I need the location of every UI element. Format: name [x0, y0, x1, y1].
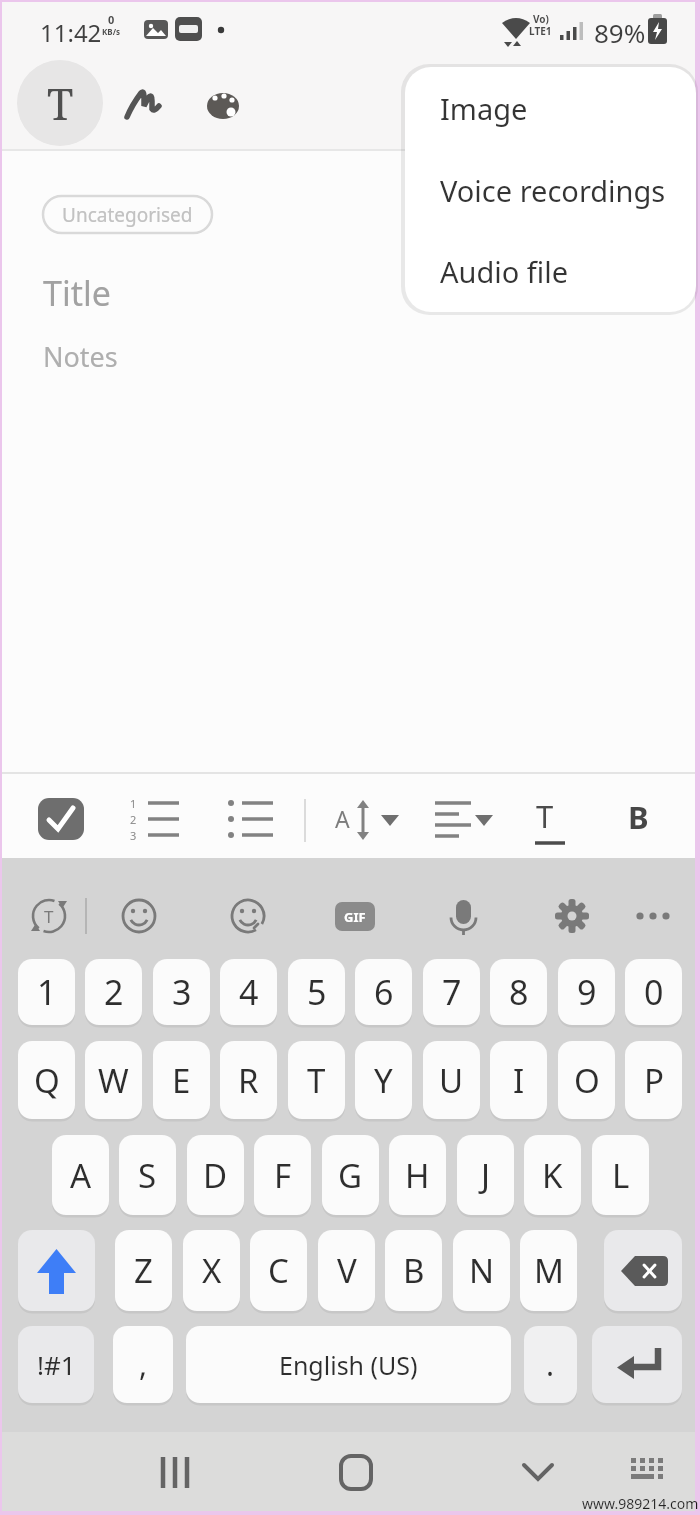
button[interactable]: X — [183, 1230, 240, 1311]
staticText: 3 — [130, 828, 137, 843]
staticText: M — [534, 1248, 564, 1293]
button[interactable]: 2 — [85, 959, 142, 1025]
button[interactable] — [426, 790, 494, 850]
button[interactable]: A — [52, 1135, 109, 1215]
button[interactable]: Y — [355, 1041, 412, 1119]
staticText: I — [513, 1058, 525, 1103]
staticText: 0 — [108, 12, 115, 27]
button[interactable]: O — [558, 1041, 615, 1119]
button[interactable]: S — [119, 1135, 176, 1215]
button[interactable] — [142, 1440, 206, 1504]
staticText: L — [612, 1153, 630, 1198]
staticText: T — [44, 905, 54, 928]
button[interactable] — [436, 890, 490, 944]
staticText: A — [70, 1153, 92, 1198]
staticText: Q — [34, 1058, 60, 1103]
staticText: T — [307, 1058, 326, 1103]
staticText: , — [139, 1344, 148, 1385]
staticText: J — [481, 1153, 491, 1198]
staticText: 2 — [104, 969, 124, 1015]
staticText: R — [238, 1058, 259, 1103]
button[interactable]: C — [250, 1230, 307, 1311]
button[interactable] — [221, 890, 275, 944]
staticText: 4 — [239, 969, 259, 1015]
button[interactable]: M — [520, 1230, 577, 1311]
button[interactable]: H — [389, 1135, 446, 1215]
button[interactable]: Audio file — [405, 231, 696, 312]
button[interactable] — [22, 890, 76, 944]
button[interactable] — [616, 1440, 680, 1504]
button[interactable]: Q — [18, 1041, 75, 1119]
button[interactable]: , — [113, 1326, 173, 1403]
button[interactable]: U — [423, 1041, 480, 1119]
button[interactable]: English (US) — [186, 1326, 511, 1403]
button[interactable]: I — [490, 1041, 547, 1119]
button[interactable]: 5 — [288, 959, 345, 1025]
staticText: GIF — [344, 908, 366, 926]
button[interactable]: F — [254, 1135, 311, 1215]
button[interactable] — [616, 790, 664, 850]
button[interactable]: J — [457, 1135, 514, 1215]
button[interactable]: T — [288, 1041, 345, 1119]
staticText: . — [546, 1344, 555, 1385]
staticText: Y — [374, 1058, 393, 1103]
button[interactable]: . — [524, 1326, 577, 1403]
button[interactable]: 3 — [153, 959, 210, 1025]
button[interactable]: 9 — [558, 959, 615, 1025]
button[interactable]: B — [385, 1230, 442, 1311]
staticText: 89% — [594, 15, 646, 50]
button[interactable]: V — [318, 1230, 375, 1311]
button[interactable]: 7 — [423, 959, 480, 1025]
staticText: 8 — [509, 969, 529, 1015]
button[interactable] — [18, 1230, 95, 1311]
button[interactable]: 6 — [355, 959, 412, 1025]
button[interactable] — [626, 890, 680, 944]
button[interactable]: 1 — [18, 959, 75, 1025]
button[interactable] — [545, 890, 599, 944]
button[interactable]: Voice recordings — [405, 149, 696, 231]
staticText: S — [138, 1153, 157, 1198]
button[interactable] — [327, 790, 403, 850]
staticText: B — [628, 796, 649, 838]
button[interactable] — [328, 890, 382, 944]
button[interactable]: D — [187, 1135, 244, 1215]
button[interactable] — [194, 76, 250, 132]
button[interactable] — [604, 1230, 682, 1311]
button[interactable] — [322, 1440, 386, 1504]
button[interactable] — [32, 790, 94, 850]
staticText: English (US) — [279, 1348, 418, 1382]
button[interactable]: R — [220, 1041, 277, 1119]
button[interactable] — [127, 790, 187, 850]
button[interactable] — [592, 1326, 682, 1403]
button[interactable] — [504, 1440, 568, 1504]
button[interactable]: W — [85, 1041, 142, 1119]
button[interactable]: N — [453, 1230, 510, 1311]
button[interactable] — [112, 890, 166, 944]
button[interactable] — [114, 76, 170, 132]
button[interactable]: 4 — [220, 959, 277, 1025]
button[interactable]: T — [17, 60, 103, 146]
staticText: U — [439, 1058, 464, 1103]
button[interactable]: Z — [115, 1230, 172, 1311]
staticText: C — [268, 1248, 289, 1293]
staticText: K — [542, 1153, 563, 1198]
button[interactable]: P — [625, 1041, 682, 1119]
staticText: 3 — [172, 969, 192, 1015]
button[interactable]: Uncategorised — [43, 196, 212, 233]
button[interactable]: !#1 — [18, 1326, 94, 1403]
button[interactable]: G — [322, 1135, 379, 1215]
staticText: 1 — [37, 969, 57, 1015]
staticText: F — [274, 1153, 292, 1198]
button[interactable]: K — [524, 1135, 581, 1215]
button[interactable]: Image — [405, 67, 696, 149]
button[interactable]: 8 — [490, 959, 547, 1025]
staticText: Title — [43, 270, 111, 316]
staticText: V — [337, 1248, 357, 1293]
button[interactable] — [220, 790, 280, 850]
staticText: 2 — [130, 812, 137, 827]
staticText: 1 — [130, 796, 137, 811]
button[interactable] — [526, 790, 574, 850]
button[interactable]: E — [153, 1041, 210, 1119]
button[interactable]: 0 — [625, 959, 682, 1025]
button[interactable]: L — [592, 1135, 649, 1215]
